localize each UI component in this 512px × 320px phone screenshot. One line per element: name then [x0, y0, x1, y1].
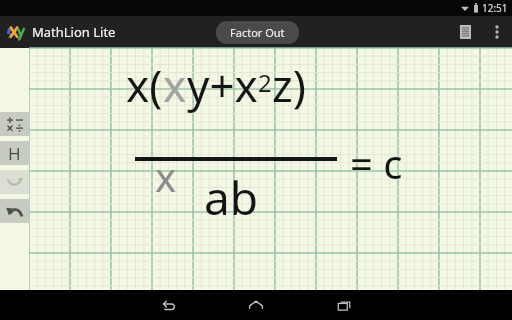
staticText: x — [155, 149, 177, 203]
staticText: 2 — [258, 66, 272, 99]
button[interactable]: History — [448, 16, 482, 48]
button[interactable]: H — [0, 141, 29, 165]
staticText: x — [163, 55, 187, 115]
staticText: x( — [126, 55, 163, 115]
button[interactable]: Home — [240, 290, 272, 320]
staticText: H — [8, 142, 21, 165]
button[interactable]: More options — [482, 17, 512, 47]
button[interactable]: Back — [152, 290, 184, 320]
button[interactable]: Undo — [0, 199, 29, 223]
staticText: 12:51 — [482, 1, 508, 15]
staticText: z) — [272, 55, 306, 115]
staticText: = c — [350, 136, 403, 190]
staticText: Factor Out — [230, 25, 285, 40]
staticText: ab — [204, 166, 259, 229]
button[interactable]: Recent apps — [328, 290, 360, 320]
button[interactable]: MathLion Lite — [6, 22, 116, 42]
staticText: y+x — [187, 55, 258, 115]
button[interactable] — [0, 112, 29, 136]
button[interactable]: Factor Out — [216, 21, 299, 44]
button[interactable]: Redo — [0, 170, 29, 194]
staticText: MathLion Lite — [32, 23, 116, 41]
